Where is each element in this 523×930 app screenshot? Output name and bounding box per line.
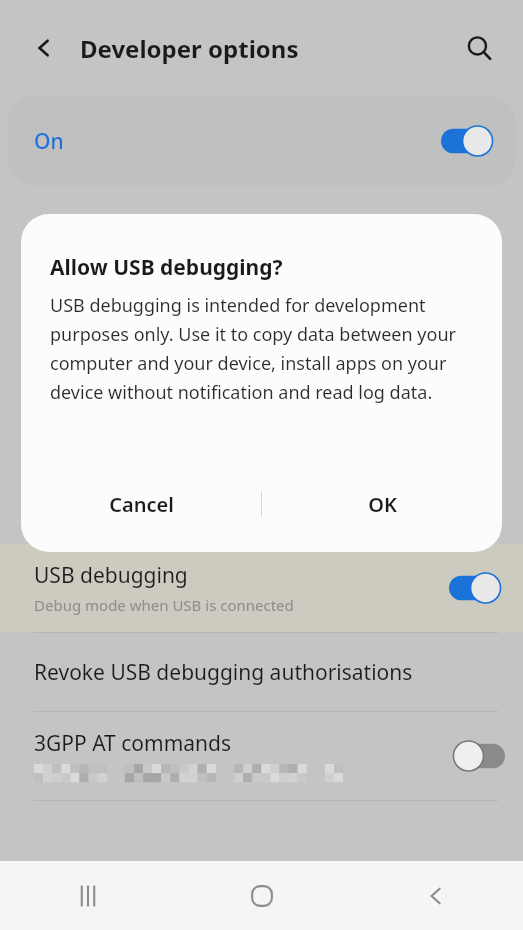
button[interactable]: Recents <box>0 861 175 930</box>
staticText: USB debugging is intended for developmen… <box>50 293 480 404</box>
staticText: Allow USB debugging? <box>50 253 283 282</box>
button[interactable]: Home <box>175 861 349 930</box>
staticText: Cancel <box>109 491 174 518</box>
staticText: 3GPP AT commands <box>34 729 232 758</box>
button[interactable]: OK <box>262 462 502 546</box>
button[interactable]: On <box>8 96 515 186</box>
button[interactable]: Cancel <box>21 462 261 546</box>
button[interactable]: Search <box>455 24 503 72</box>
staticText: OK <box>368 491 397 518</box>
button[interactable]: USB debugging <box>0 544 523 632</box>
staticText: Revoke USB debugging authorisations <box>34 658 413 687</box>
staticText: USB debugging <box>34 561 188 590</box>
button[interactable]: 3GPP AT commands <box>0 712 523 800</box>
staticText: Developer options <box>80 32 299 65</box>
staticText: On <box>34 127 64 156</box>
button[interactable]: Back <box>22 26 66 70</box>
button[interactable]: Revoke USB debugging authorisations <box>0 633 523 711</box>
button[interactable]: Back <box>349 861 523 930</box>
staticText: Debug mode when USB is connected <box>34 595 294 615</box>
